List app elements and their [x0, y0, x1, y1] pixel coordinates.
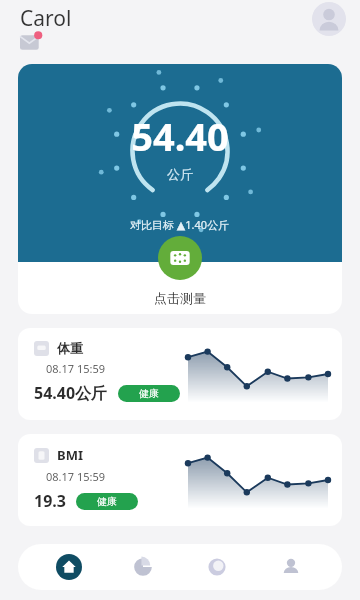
staticText: 对比目标 ▲1.40公斤 [130, 217, 230, 232]
staticText: 08.17 15:59 [46, 469, 106, 484]
button[interactable]: Account [268, 544, 314, 590]
staticText: 体重 [57, 340, 83, 356]
button[interactable]: Messages [20, 30, 44, 54]
button[interactable]: Measure [158, 236, 202, 280]
button[interactable]: Stats [120, 544, 166, 590]
staticText: 19.3 [34, 490, 66, 512]
button[interactable]: Plan [194, 544, 240, 590]
button[interactable]: Profile [312, 2, 346, 36]
staticText: Carol [20, 4, 72, 33]
staticText: 08.17 15:59 [46, 361, 106, 376]
button[interactable]: Home [46, 544, 92, 590]
button[interactable]: BMI [18, 434, 342, 526]
button[interactable]: 体重 [18, 328, 342, 420]
staticText: 健康 [97, 495, 117, 508]
staticText: BMI [57, 446, 83, 464]
staticText: 公斤 [167, 166, 193, 182]
staticText: 54.40 [131, 110, 229, 162]
staticText: 54.40公斤 [34, 382, 108, 404]
staticText: 点击测量 [154, 290, 206, 306]
staticText: 健康 [139, 387, 159, 400]
